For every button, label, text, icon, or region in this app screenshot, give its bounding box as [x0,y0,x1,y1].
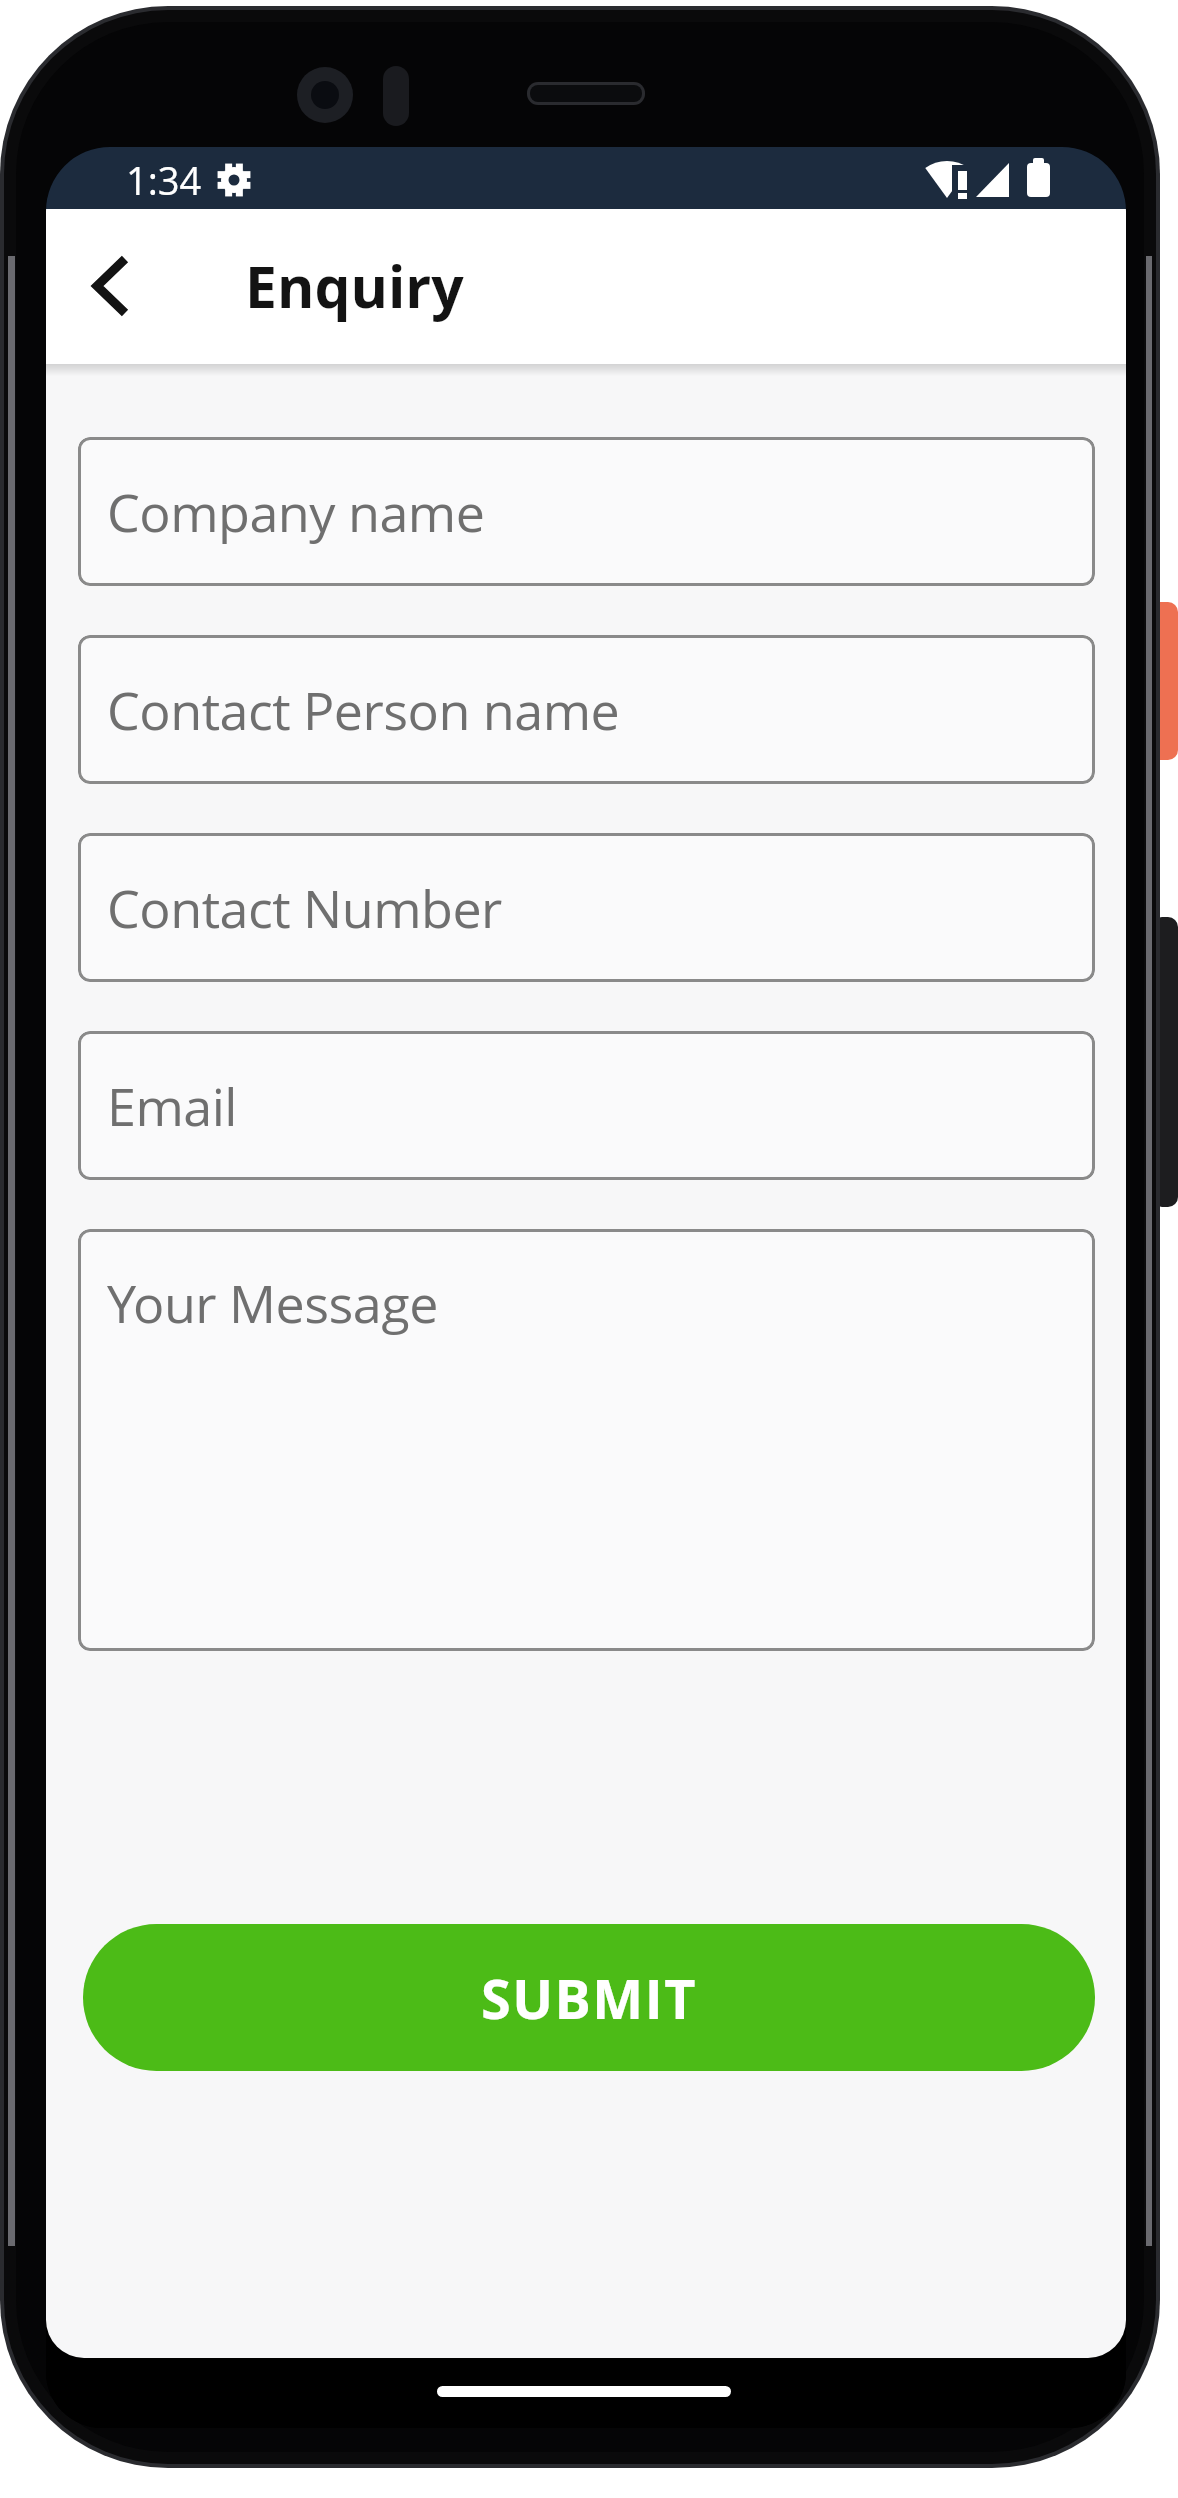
staticText: Enquiry [245,247,464,325]
button[interactable] [70,241,150,331]
button[interactable]: Company name [78,437,1095,586]
staticText: Your Message [107,1267,438,1338]
staticText: Contact Person name [107,674,620,745]
button[interactable]: Email [78,1031,1095,1180]
staticText: Contact Number [107,872,502,943]
button[interactable]: Contact Number [78,833,1095,982]
button[interactable]: Your Message [78,1229,1095,1651]
staticText: 1:34 [126,154,202,206]
button[interactable]: Contact Person name [78,635,1095,784]
staticText: SUBMIT [481,1961,697,2035]
button[interactable]: SUBMIT [83,1924,1095,2071]
staticText: Email [107,1070,238,1141]
staticText: Company name [107,476,485,547]
